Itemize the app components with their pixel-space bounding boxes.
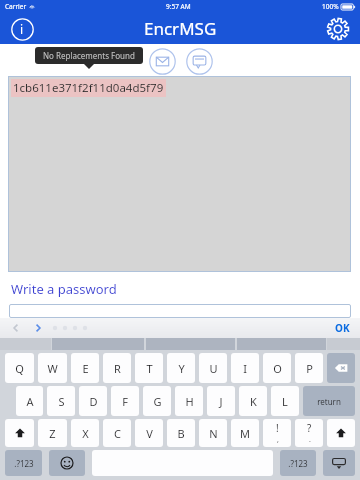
button[interactable]: X — [71, 419, 99, 447]
button[interactable]: M — [231, 419, 259, 447]
staticText: H — [185, 394, 194, 409]
button[interactable]: J — [207, 386, 235, 416]
staticText: EncrMSG — [144, 17, 217, 40]
staticText: .?123 — [14, 458, 34, 469]
button[interactable]: G — [143, 386, 171, 416]
button[interactable]: Y — [167, 353, 195, 383]
button[interactable]: W — [38, 353, 67, 383]
button[interactable]: OK — [335, 321, 350, 335]
button[interactable]: K — [239, 386, 267, 416]
button[interactable]: I — [231, 353, 259, 383]
button[interactable]: Shift — [5, 419, 34, 447]
button[interactable]: Hide keyboard — [323, 450, 355, 476]
button[interactable]: Z — [38, 419, 67, 447]
button[interactable]: 1cb611e371f2f11d0a4d5f79 — [8, 76, 351, 272]
button[interactable]: Settings — [324, 15, 352, 43]
button[interactable]: Exclamation — [263, 419, 291, 447]
button[interactable]: Emoji — [49, 450, 85, 476]
staticText: T — [146, 361, 153, 376]
staticText: X — [82, 426, 89, 441]
button[interactable]: T — [135, 353, 163, 383]
staticText: ? — [307, 421, 312, 435]
staticText: 100% — [322, 2, 339, 11]
staticText: .?123 — [288, 458, 308, 469]
staticText: E — [82, 361, 89, 376]
button[interactable]: S — [47, 386, 75, 416]
staticText: B — [177, 426, 185, 441]
button[interactable]: D — [79, 386, 107, 416]
staticText: ! — [276, 421, 279, 435]
staticText: OK — [335, 321, 350, 335]
button[interactable]: E — [71, 353, 99, 383]
button[interactable]: Send mail — [148, 47, 176, 75]
button[interactable]: V — [135, 419, 163, 447]
button[interactable]: Shift — [327, 419, 355, 447]
button[interactable]: .?123 — [280, 450, 316, 476]
button[interactable]: No Replacements Found — [43, 50, 135, 61]
staticText: G — [153, 394, 162, 409]
staticText: Z — [49, 426, 56, 441]
staticText: F — [122, 394, 128, 409]
staticText: J — [219, 394, 223, 409]
staticText: A — [26, 394, 34, 409]
staticText: Y — [178, 361, 185, 376]
button[interactable]: Backspace — [327, 353, 355, 383]
staticText: C — [114, 426, 121, 441]
staticText: Write a password — [11, 280, 117, 298]
button[interactable]: L — [271, 386, 299, 416]
staticText: i — [20, 21, 24, 37]
staticText: O — [273, 361, 282, 376]
button[interactable]: Next field — [30, 320, 46, 336]
button[interactable]: R — [103, 353, 131, 383]
button[interactable]: A — [16, 386, 43, 416]
button[interactable]: .?123 — [5, 450, 42, 476]
button[interactable]: B — [167, 419, 195, 447]
staticText: K — [250, 394, 257, 409]
button[interactable]: P — [295, 353, 323, 383]
staticText: V — [146, 426, 153, 441]
button[interactable]: Send message — [185, 47, 213, 75]
staticText: , — [277, 435, 279, 445]
staticText: 1cb611e371f2f11d0a4d5f79 — [13, 80, 164, 96]
staticText: L — [282, 394, 288, 409]
staticText: W — [47, 361, 58, 376]
button[interactable]: return — [303, 386, 355, 416]
staticText: . — [309, 435, 311, 445]
staticText: return — [317, 396, 341, 407]
button[interactable]: O — [263, 353, 291, 383]
button[interactable]: F — [111, 386, 139, 416]
button[interactable]: N — [199, 419, 227, 447]
staticText: Q — [15, 361, 24, 376]
staticText: R — [114, 361, 121, 376]
button[interactable]: U — [199, 353, 227, 383]
button[interactable]: Previous field — [8, 320, 24, 336]
staticText: No Replacements Found — [43, 50, 135, 61]
button[interactable]: Question — [295, 419, 323, 447]
button[interactable]: Info — [9, 16, 35, 42]
staticText: U — [209, 361, 218, 376]
button[interactable]: H — [175, 386, 203, 416]
button[interactable]: Q — [5, 353, 34, 383]
staticText: Carrier — [5, 2, 27, 11]
staticText: I — [243, 361, 247, 376]
staticText: M — [240, 426, 250, 441]
button[interactable] — [9, 304, 351, 318]
staticText: 9:57 AM — [166, 2, 191, 11]
staticText: D — [89, 394, 98, 409]
staticText: S — [58, 394, 65, 409]
button[interactable]: C — [103, 419, 131, 447]
staticText: P — [306, 361, 313, 376]
staticText: N — [209, 426, 218, 441]
